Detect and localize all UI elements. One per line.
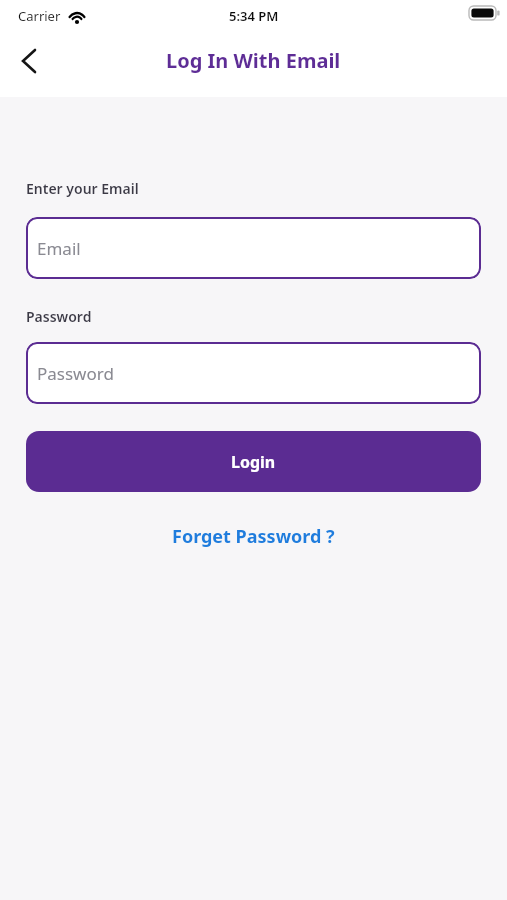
staticText: Password <box>26 307 92 326</box>
staticText: Login <box>231 451 276 473</box>
staticText: Forget Password ? <box>172 524 335 549</box>
staticText: 5:34 PM <box>229 7 279 25</box>
button[interactable] <box>12 45 46 77</box>
staticText: Carrier <box>18 7 61 25</box>
staticText: Log In With Email <box>166 47 341 74</box>
staticText: Enter your Email <box>26 179 139 198</box>
button[interactable]: Login <box>26 431 481 492</box>
staticText: Password <box>37 362 114 385</box>
staticText: Email <box>37 237 81 260</box>
button[interactable]: Forget Password ? <box>172 524 335 549</box>
button[interactable]: Password <box>26 342 481 404</box>
button[interactable]: Email <box>26 217 481 279</box>
